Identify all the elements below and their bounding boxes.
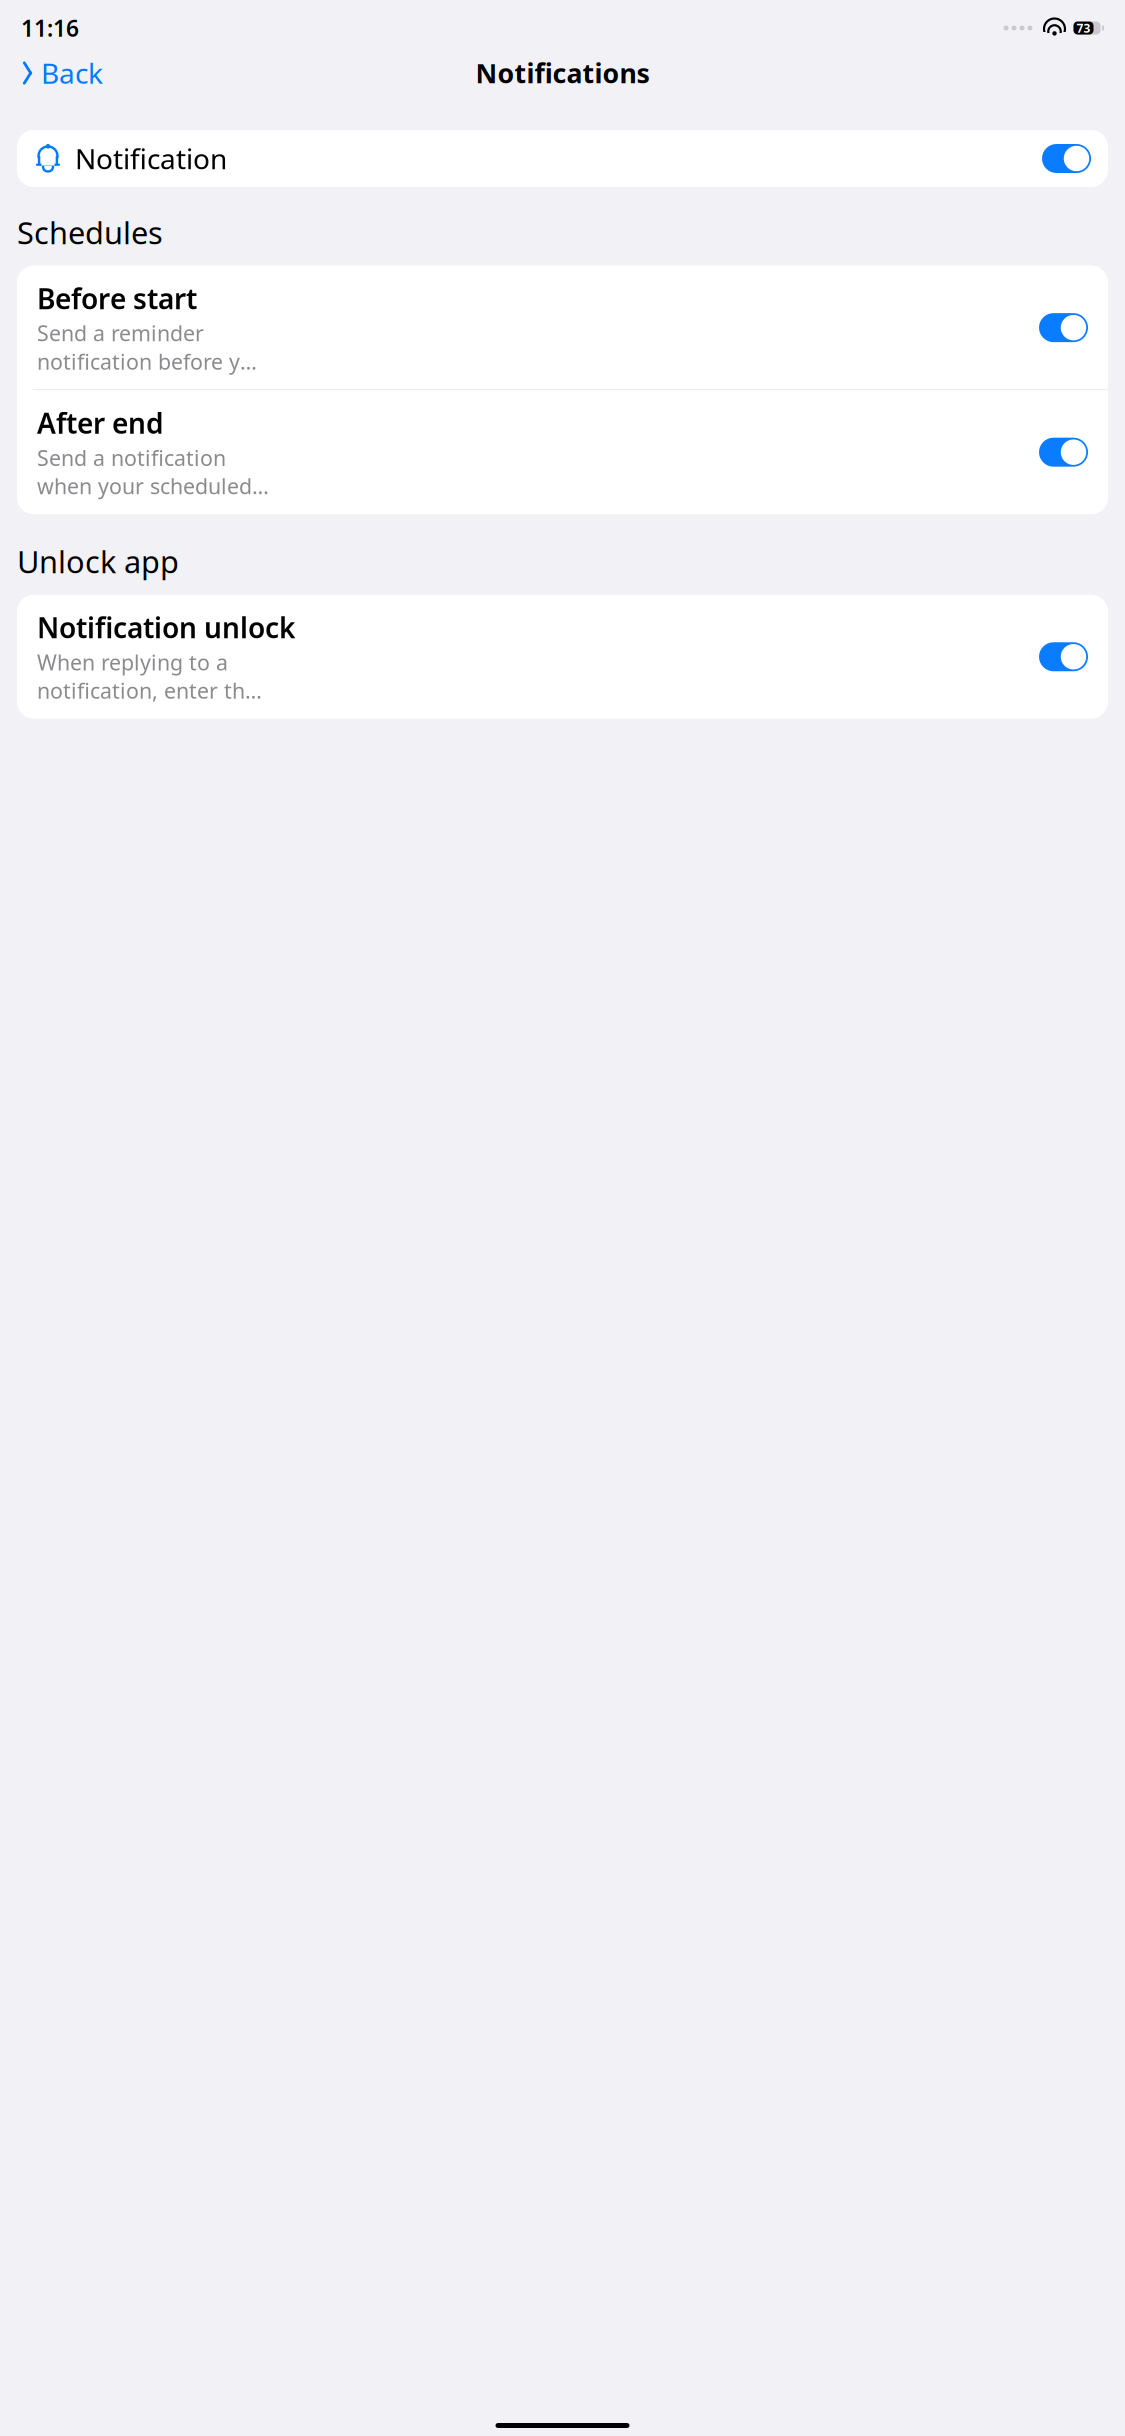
staticText: Send a notification when your scheduled …	[37, 443, 269, 500]
staticText: Unlock app	[17, 541, 179, 582]
staticText: Notifications	[475, 55, 649, 91]
button[interactable]: After end	[17, 390, 1108, 514]
button[interactable]: Notification	[17, 130, 1108, 187]
staticText: 11:16	[21, 13, 79, 43]
staticText: Schedules	[17, 212, 163, 253]
staticText: When replying to a notification, enter t…	[37, 648, 269, 705]
button[interactable]: Notification unlock	[17, 595, 1108, 719]
staticText: 73	[1076, 20, 1090, 36]
button[interactable]: Before start	[17, 266, 1108, 389]
staticText: Notification	[75, 140, 227, 177]
staticText: Send a reminder notification before your…	[37, 319, 269, 376]
button[interactable]: Back	[17, 46, 107, 100]
staticText: After end	[37, 404, 164, 441]
staticText: Before start	[37, 280, 197, 317]
staticText: Notification unlock	[37, 609, 295, 646]
staticText: Back	[41, 54, 103, 92]
